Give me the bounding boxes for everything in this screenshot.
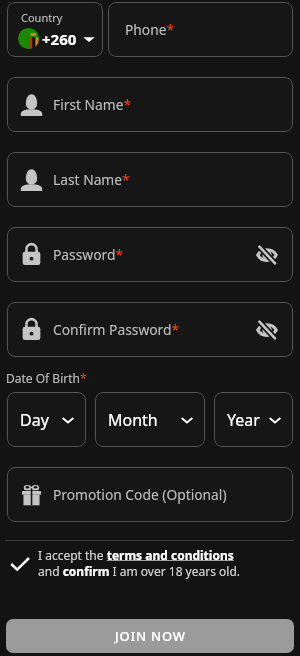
staticText: First Name* [53, 95, 132, 114]
staticText: Phone* [125, 20, 175, 39]
staticText: Confirm Password* [53, 320, 180, 339]
button[interactable]: Show password [257, 245, 277, 265]
staticText: Month [108, 409, 158, 431]
staticText: Promotion Code (Optional) [53, 485, 227, 504]
staticText: +260 [42, 29, 77, 49]
staticText: Last Name* [53, 170, 130, 189]
button[interactable]: Promotion Code (Optional) [7, 467, 293, 522]
staticText: Password* [53, 245, 124, 264]
staticText: JOIN NOW [115, 627, 186, 645]
staticText: Year [227, 409, 260, 431]
staticText: Country [21, 10, 63, 25]
button[interactable]: Month [95, 392, 205, 447]
button[interactable]: Country [7, 2, 103, 57]
button[interactable]: Year [214, 392, 293, 447]
button[interactable]: Password* [7, 227, 293, 282]
button[interactable]: Day [7, 392, 86, 447]
staticText: Date Of Birth* [6, 370, 87, 386]
button[interactable]: First Name* [7, 77, 293, 132]
button[interactable]: Last Name* [7, 152, 293, 207]
button[interactable]: Show password [257, 320, 277, 340]
button[interactable]: Confirm Password* [7, 302, 293, 357]
staticText: Day [20, 409, 49, 431]
button[interactable]: JOIN NOW [6, 619, 294, 653]
button[interactable]: I accept the terms and conditions and co… [10, 547, 290, 580]
staticText: I accept the terms and conditions and co… [38, 547, 241, 580]
button[interactable]: Phone* [108, 2, 293, 57]
